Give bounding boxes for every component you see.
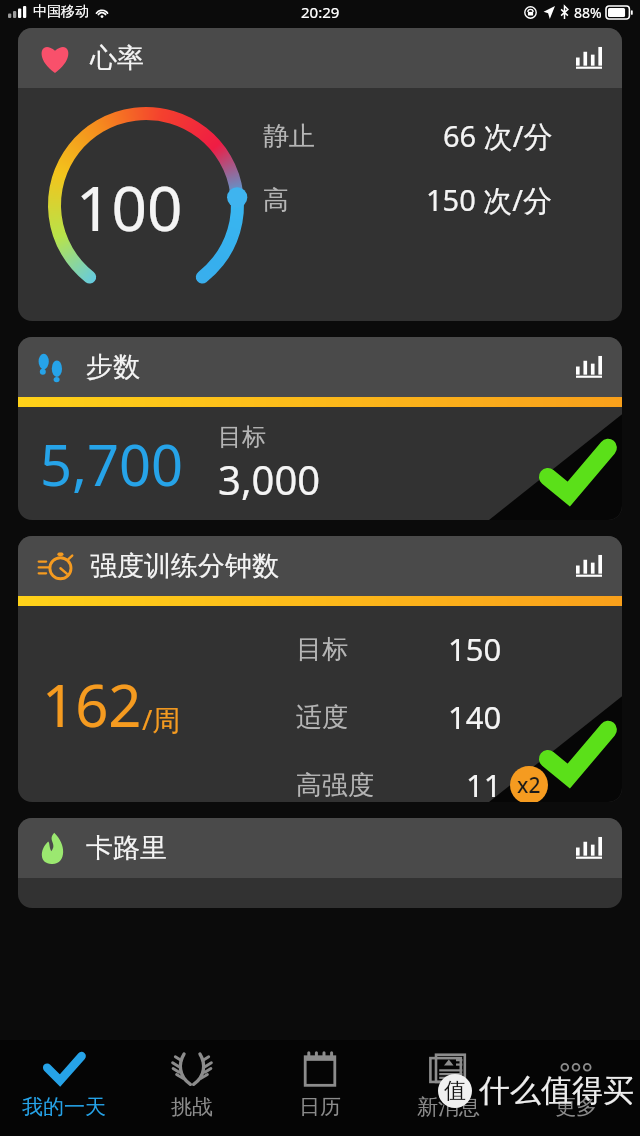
button[interactable]: 我的一天 [0,1040,128,1136]
staticText: 3,000 [218,452,321,506]
button[interactable]: 步数 [18,337,622,520]
button[interactable]: 日历 [256,1040,384,1136]
staticText: 高 [263,184,289,217]
button[interactable]: 更多 [512,1040,640,1136]
staticText: 新消息 [417,1094,480,1120]
staticText: 值 [444,1077,466,1105]
other: View chart [576,836,602,860]
staticText: 强度训练分钟数 [90,549,279,583]
staticText: 140 [448,696,502,738]
staticText: 66 次/分 [443,116,553,156]
staticText: 11 [466,764,502,802]
button[interactable]: 卡路里 [18,818,622,908]
staticText: 什么值得买 [479,1071,634,1110]
staticText: 高强度 [296,769,374,802]
button[interactable]: 强度训练分钟数 [18,536,622,802]
staticText: 卡路里 [86,831,167,865]
staticText: 步数 [86,350,140,384]
staticText: 88% [574,3,602,22]
staticText: 静止 [263,120,315,153]
staticText: 中国移动 [33,3,89,21]
other: View chart [576,46,602,70]
button[interactable]: 新消息 [384,1040,512,1136]
button[interactable]: 步数 [18,337,622,397]
other: View chart [576,554,602,578]
staticText: 心率 [90,41,144,75]
staticText: 日历 [299,1094,341,1120]
button[interactable]: 挑战 [128,1040,256,1136]
staticText: 5,700 [40,426,184,502]
button[interactable]: 卡路里 [18,818,622,878]
button[interactable]: 心率 [18,28,622,88]
staticText: 目标 [296,633,348,666]
other: View chart [576,355,602,379]
staticText: 更多 [555,1094,597,1120]
button[interactable]: 强度训练分钟数 [18,536,622,596]
staticText: 挑战 [171,1094,213,1120]
staticText: 150 [448,628,502,670]
staticText: /周 [142,700,181,738]
staticText: 我的一天 [22,1094,106,1120]
staticText: 适度 [296,701,348,734]
staticText: 150 次/分 [426,180,553,220]
button[interactable]: 心率 [18,28,622,321]
staticText: 目标 [218,422,266,452]
staticText: 100 [76,165,183,249]
staticText: x2 [517,771,541,800]
staticText: 20:29 [301,2,340,22]
staticText: 162 [42,665,142,744]
